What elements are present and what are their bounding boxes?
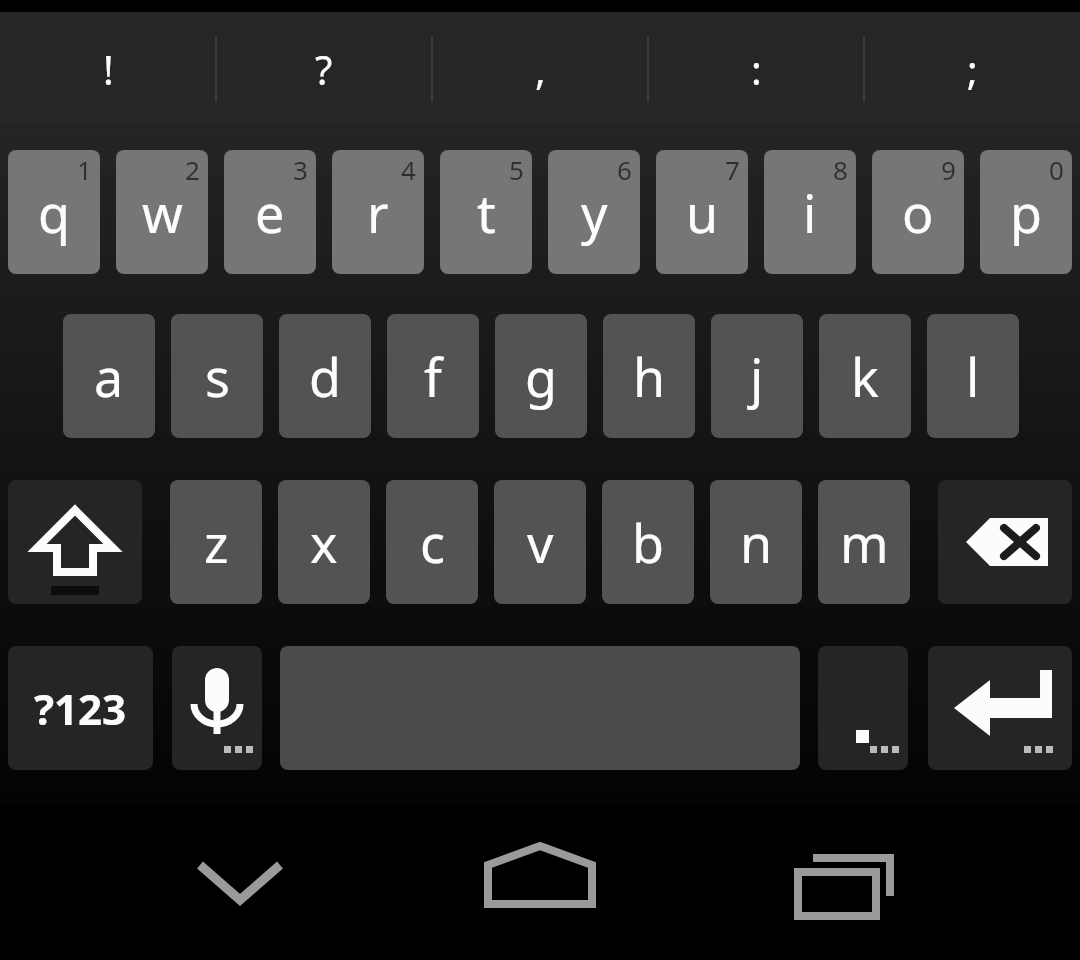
button[interactable]: l: [927, 314, 1019, 438]
staticText: j: [750, 341, 764, 412]
staticText: 6: [617, 152, 632, 187]
button[interactable]: j: [711, 314, 803, 438]
button[interactable]: ?123: [8, 646, 153, 770]
staticText: e: [255, 177, 285, 248]
button[interactable]: Voice input: [172, 646, 262, 770]
button[interactable]: g: [495, 314, 587, 438]
button[interactable]: Recent apps: [765, 820, 925, 940]
staticText: c: [420, 507, 445, 578]
button[interactable]: x: [278, 480, 370, 604]
staticText: l: [966, 341, 980, 412]
staticText: w: [142, 177, 183, 248]
staticText: 7: [725, 152, 740, 187]
staticText: 8: [833, 152, 848, 187]
staticText: ?: [315, 42, 333, 96]
staticText: m: [840, 507, 889, 578]
staticText: k: [851, 341, 879, 412]
button[interactable]: k: [819, 314, 911, 438]
staticText: v: [527, 507, 554, 578]
staticText: z: [204, 507, 229, 578]
button[interactable]: a: [63, 314, 155, 438]
staticText: t: [477, 177, 496, 248]
button[interactable]: ;: [864, 12, 1080, 125]
button[interactable]: q: [8, 150, 100, 274]
staticText: :: [751, 42, 762, 96]
staticText: h: [633, 341, 666, 412]
staticText: u: [686, 177, 719, 248]
button[interactable]: c: [386, 480, 478, 604]
button[interactable]: z: [170, 480, 262, 604]
staticText: x: [310, 507, 338, 578]
staticText: 4: [401, 152, 416, 187]
staticText: ;: [967, 42, 978, 96]
button[interactable]: r: [332, 150, 424, 274]
staticText: s: [205, 341, 230, 412]
button[interactable]: p: [980, 150, 1072, 274]
staticText: r: [367, 177, 389, 248]
button[interactable]: y: [548, 150, 640, 274]
button[interactable]: d: [279, 314, 371, 438]
staticText: g: [525, 341, 557, 412]
button[interactable]: h: [603, 314, 695, 438]
button[interactable]: ,: [432, 12, 648, 125]
staticText: n: [740, 507, 773, 578]
button[interactable]: v: [494, 480, 586, 604]
staticText: o: [902, 177, 934, 248]
staticText: i: [803, 177, 817, 248]
staticText: d: [309, 341, 341, 412]
button[interactable]: b: [602, 480, 694, 604]
button[interactable]: w: [116, 150, 208, 274]
button[interactable]: m: [818, 480, 910, 604]
staticText: ,: [535, 42, 546, 96]
staticText: b: [632, 507, 664, 578]
staticText: q: [38, 177, 70, 248]
button[interactable]: Enter: [928, 646, 1072, 770]
staticText: f: [424, 341, 442, 412]
button[interactable]: n: [710, 480, 802, 604]
button[interactable]: Backspace: [938, 480, 1072, 604]
button[interactable]: e: [224, 150, 316, 274]
staticText: ?123: [34, 680, 127, 737]
staticText: a: [94, 341, 124, 412]
staticText: 1: [77, 152, 92, 187]
button[interactable]: ?: [216, 12, 432, 125]
staticText: 0: [1049, 152, 1064, 187]
staticText: 3: [293, 152, 308, 187]
button[interactable]: Hide keyboard: [160, 820, 320, 940]
button[interactable]: [818, 646, 908, 770]
staticText: 5: [509, 152, 524, 187]
button[interactable]: i: [764, 150, 856, 274]
staticText: 2: [185, 152, 200, 187]
button[interactable]: Shift: [8, 480, 142, 604]
button[interactable]: t: [440, 150, 532, 274]
button[interactable]: o: [872, 150, 964, 274]
staticText: y: [581, 177, 608, 248]
button[interactable]: !: [0, 12, 216, 125]
staticText: p: [1010, 177, 1042, 248]
button[interactable]: Home: [460, 820, 620, 940]
button[interactable]: f: [387, 314, 479, 438]
button[interactable]: :: [648, 12, 864, 125]
button[interactable]: u: [656, 150, 748, 274]
button[interactable]: s: [171, 314, 263, 438]
staticText: !: [103, 42, 114, 96]
staticText: 9: [941, 152, 956, 187]
